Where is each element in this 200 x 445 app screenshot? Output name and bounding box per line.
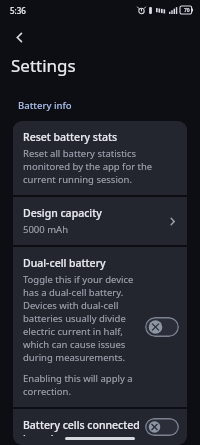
- staticText: Battery info: [18, 99, 72, 112]
- button[interactable]: Battery cells connected in series: [13, 409, 187, 445]
- button[interactable]: Dual-cell battery toggle: [145, 317, 179, 337]
- staticText: Toggle this if your device has a dual-ce…: [23, 273, 140, 364]
- staticText: 5:36: [10, 5, 26, 16]
- staticText: Enabling this will apply a correction.: [23, 372, 140, 398]
- button[interactable]: Back: [6, 24, 32, 50]
- button[interactable]: Design capacity: [13, 197, 187, 245]
- staticText: 5000 mAh: [23, 223, 69, 236]
- staticText: Settings: [11, 54, 76, 77]
- staticText: Battery cells connected in series: [23, 418, 140, 436]
- button[interactable]: Battery cells connected in series toggle: [145, 418, 179, 436]
- staticText: Reset all battery statistics monitored b…: [23, 147, 177, 186]
- staticText: Design capacity: [23, 206, 102, 220]
- staticText: 70: [184, 7, 190, 14]
- button[interactable]: Reset battery stats: [13, 121, 187, 195]
- staticText: Dual-cell battery: [23, 256, 106, 270]
- button[interactable]: Dual-cell battery: [13, 247, 187, 407]
- staticText: Reset battery stats: [23, 130, 118, 144]
